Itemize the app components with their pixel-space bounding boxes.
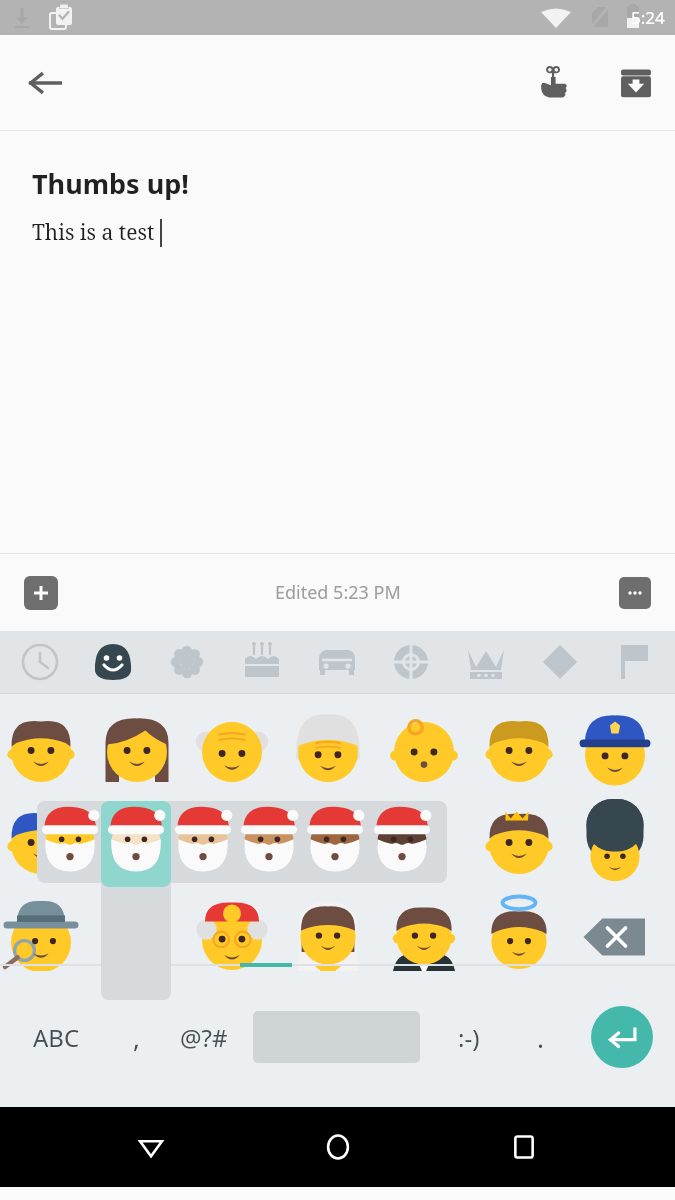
button[interactable]: More options	[619, 577, 651, 609]
button[interactable]: Back	[115, 1111, 187, 1183]
button[interactable]: Nature	[150, 631, 225, 693]
button[interactable]: Travel	[300, 631, 375, 693]
button[interactable]: Back	[14, 52, 76, 114]
button[interactable]: Symbols	[525, 631, 600, 693]
button[interactable]: Objects	[450, 631, 525, 693]
button[interactable]: Smileys	[75, 631, 150, 693]
button[interactable]: Food	[225, 631, 300, 693]
staticText: 5:24	[631, 6, 665, 29]
button[interactable]: ,	[108, 997, 164, 1077]
button[interactable]: Activities	[375, 631, 450, 693]
staticText: Edited 5:23 PM	[275, 580, 401, 605]
staticText: @?#	[180, 1021, 228, 1054]
button[interactable]: Recent	[0, 631, 75, 693]
button[interactable]: Add	[24, 576, 58, 610]
button[interactable]: .	[512, 997, 568, 1077]
button[interactable]: Reminder	[521, 52, 583, 114]
staticText: Thumbs up!	[32, 165, 189, 202]
button[interactable]: :-)	[434, 997, 504, 1077]
button[interactable]: @?#	[164, 997, 244, 1077]
staticText: :-)	[458, 1021, 480, 1054]
button[interactable]: Archive	[605, 52, 667, 114]
button[interactable]: Recents	[488, 1111, 560, 1183]
staticText: .	[537, 1020, 544, 1055]
button[interactable]: ABC	[10, 997, 102, 1077]
staticText: ,	[133, 1020, 140, 1055]
button[interactable]: Flags	[600, 631, 675, 693]
button[interactable]: Enter	[591, 1006, 653, 1068]
staticText: This is a test	[32, 218, 160, 247]
button[interactable]: Home	[302, 1111, 374, 1183]
staticText: ABC	[33, 1021, 80, 1054]
